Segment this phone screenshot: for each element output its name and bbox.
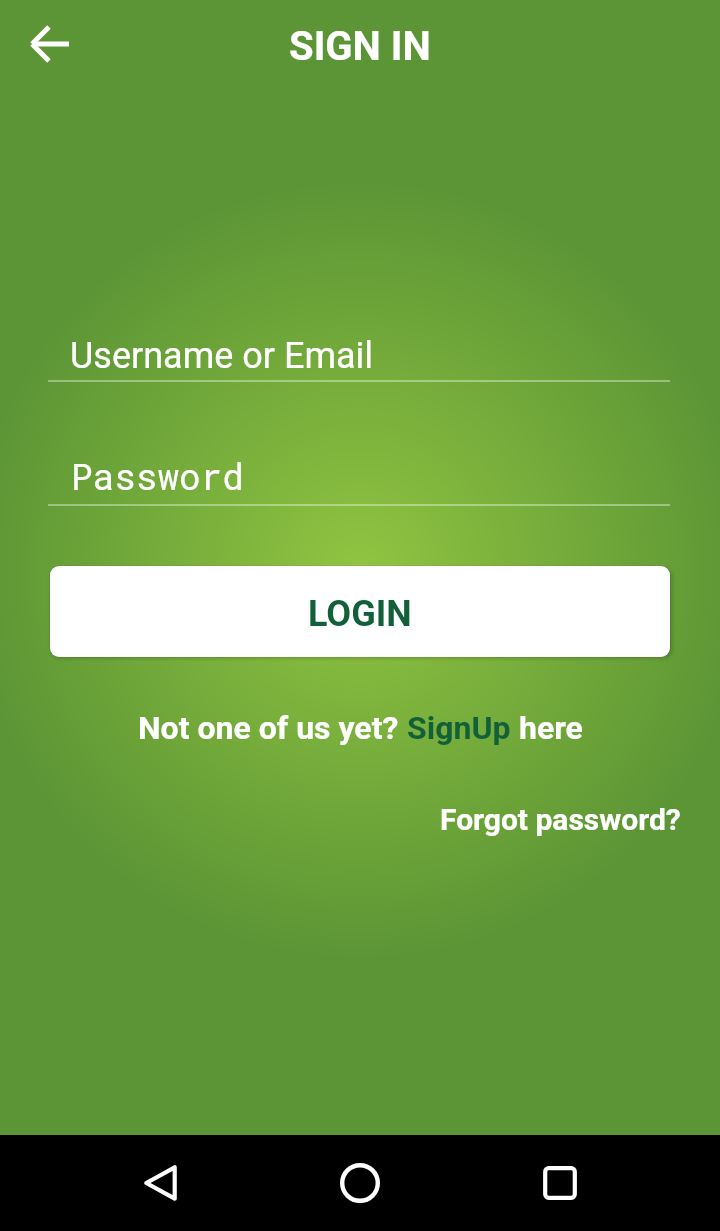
button[interactable]: Home	[326, 1135, 394, 1231]
button[interactable]: Recent apps	[526, 1135, 594, 1231]
button[interactable]: Navigate up	[19, 13, 81, 75]
button[interactable]: Password	[48, 446, 670, 506]
staticText: Password	[71, 452, 244, 499]
staticText: here	[511, 709, 583, 747]
button[interactable]: Back	[126, 1135, 194, 1231]
button[interactable]: LOGIN	[50, 566, 670, 657]
staticText: SIGN IN	[289, 23, 431, 70]
button[interactable]: Username or Email	[48, 322, 670, 382]
staticText: LOGIN	[308, 593, 412, 635]
button[interactable]: Forgot password?	[440, 802, 681, 837]
staticText: Username or Email	[70, 335, 374, 377]
staticText: Not one of us yet?	[138, 709, 407, 747]
button[interactable]: SignUp	[407, 709, 511, 747]
